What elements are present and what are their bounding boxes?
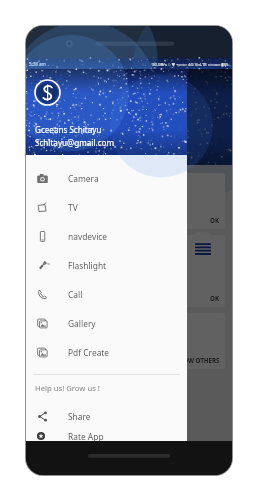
button[interactable]: Share	[26, 402, 187, 431]
button[interactable]: Open list menu	[186, 232, 219, 265]
staticText: SHOW OTHERS	[175, 356, 220, 364]
staticText: 30.0B/s ◌ ▼ ⌁▭▭ 4G VoLTE ▭▭▭ ▮85	[152, 61, 229, 67]
staticText: Camera	[68, 173, 99, 184]
staticText: navdevice	[68, 231, 108, 242]
button[interactable]: Flashlight	[26, 251, 187, 280]
button[interactable]: TV	[26, 193, 187, 222]
staticText: TV	[68, 202, 78, 213]
button[interactable]: Camera	[26, 164, 187, 193]
staticText: OK	[210, 294, 220, 302]
button[interactable]: Call	[26, 280, 187, 309]
staticText: Rate App	[68, 431, 104, 441]
button[interactable]: Gallery	[26, 309, 187, 338]
button[interactable]: Rate App	[26, 431, 187, 441]
staticText: Help us! Grow us !	[35, 383, 100, 393]
staticText: Flashlight	[68, 260, 107, 271]
staticText: Batch of 20	[33, 150, 73, 160]
staticText: 5:38 am	[29, 61, 46, 67]
staticText: Share	[68, 411, 91, 422]
staticText: Gallery	[68, 318, 96, 329]
button[interactable]: navdevice	[26, 222, 187, 251]
staticText: OK	[210, 216, 220, 224]
button[interactable]	[26, 69, 232, 441]
staticText: Gceeans Schitayu	[35, 124, 102, 135]
staticText: Pdf Create	[68, 347, 110, 358]
button[interactable]: Pdf Create	[26, 338, 187, 367]
staticText: Call	[68, 289, 83, 300]
staticText: Schitayu@gmail.com	[35, 137, 115, 148]
